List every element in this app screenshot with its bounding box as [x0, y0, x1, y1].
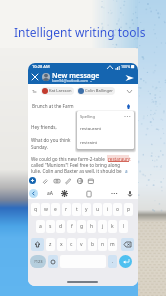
staticText: r	[65, 206, 68, 213]
staticText: p	[127, 206, 131, 213]
staticText: u	[96, 206, 100, 213]
button[interactable]: restaurant	[77, 121, 134, 135]
staticText: y	[85, 206, 88, 213]
button[interactable]: Backspace	[121, 238, 134, 251]
staticText: b	[91, 241, 95, 248]
staticText: aA	[47, 190, 53, 197]
staticText: restraint	[80, 139, 98, 145]
staticText: restaurant	[80, 125, 102, 131]
button[interactable]: Voice input	[124, 188, 135, 199]
staticText: d	[59, 223, 63, 230]
button[interactable]: Back	[28, 188, 39, 199]
staticText: Julie, Colin and Baxter as well, it shou…	[31, 168, 123, 174]
button[interactable]: Settings	[59, 188, 70, 199]
staticText: s	[49, 223, 52, 230]
staticText: Sunday.	[31, 144, 48, 150]
staticText: To	[32, 89, 37, 95]
button[interactable]: w	[41, 203, 50, 216]
button[interactable]: Calendar	[85, 175, 96, 186]
button[interactable]: v	[77, 238, 86, 251]
staticText: Colin Ballinger	[85, 88, 113, 94]
button[interactable]: Enter	[119, 255, 132, 268]
button[interactable]: More options	[109, 188, 120, 199]
staticText: Brunch at the Farm	[32, 103, 74, 109]
button[interactable]: u	[93, 203, 102, 216]
button[interactable]: z	[46, 238, 55, 251]
button[interactable]: s	[46, 220, 55, 233]
button[interactable]: Close	[29, 71, 41, 83]
button[interactable]: Send	[122, 71, 136, 85]
button[interactable]: t	[72, 203, 81, 216]
button[interactable]: Period	[108, 255, 117, 268]
staticText: h	[90, 223, 94, 230]
button[interactable]: Signature	[62, 175, 73, 186]
button[interactable]: m	[108, 238, 117, 251]
button[interactable]: Emoji	[48, 255, 58, 268]
button[interactable]: b	[88, 238, 97, 251]
button[interactable]: r	[62, 203, 71, 216]
staticText: t	[76, 206, 78, 213]
staticText: a	[125, 168, 128, 174]
staticText: l	[123, 223, 125, 230]
button[interactable]: a	[36, 220, 45, 233]
button[interactable]: restraint	[77, 135, 134, 149]
staticText: 10:28 AM	[32, 64, 50, 69]
staticText: i	[107, 206, 109, 213]
button[interactable]: g	[77, 220, 86, 233]
staticText: New message	[52, 71, 100, 81]
button[interactable]: Formatting	[44, 188, 55, 199]
button[interactable]: j	[98, 220, 107, 233]
button[interactable]: Kat Larsson	[41, 87, 74, 95]
staticText: called "Munions"! Feel free to bring alo…	[31, 162, 121, 168]
button[interactable]: d	[56, 220, 65, 233]
button[interactable]: Symbols	[30, 255, 46, 268]
button[interactable]: Take photo	[51, 175, 62, 186]
button[interactable]: c	[67, 238, 76, 251]
staticText: g	[80, 223, 84, 230]
staticText: Hey friends,	[31, 124, 57, 130]
staticText: n	[101, 241, 105, 248]
staticText: z	[49, 241, 52, 248]
button[interactable]: i	[103, 203, 112, 216]
staticText: f	[71, 223, 73, 230]
button[interactable]: Attach file	[39, 175, 50, 186]
staticText: .	[112, 258, 114, 265]
staticText: Spelling	[80, 114, 95, 119]
staticText: o	[116, 206, 120, 213]
staticText: Kat Larsson	[49, 88, 72, 94]
button[interactable]: Colin Ballinger	[77, 87, 115, 95]
staticText: e	[54, 206, 57, 213]
staticText: ?123	[34, 259, 43, 264]
staticText: j	[102, 223, 104, 230]
button[interactable]: Shift	[31, 238, 44, 251]
staticText: c	[70, 241, 73, 248]
staticText: 100%	[121, 64, 131, 69]
button[interactable]: n	[98, 238, 107, 251]
staticText: m	[110, 241, 115, 248]
button[interactable]: Add attachment	[28, 175, 38, 186]
button[interactable]: e	[51, 203, 60, 216]
button[interactable]: o	[113, 203, 122, 216]
button[interactable]: x	[57, 238, 66, 251]
staticText: What do you think	[31, 137, 71, 143]
staticText: k	[111, 223, 114, 230]
button[interactable]: k	[108, 220, 117, 233]
staticText: kam94@outlook.com ⌄	[52, 78, 93, 83]
staticText: w	[44, 206, 48, 213]
button[interactable]: y	[82, 203, 91, 216]
button[interactable]: q	[31, 203, 40, 216]
button[interactable]: f	[67, 220, 76, 233]
button[interactable]: l	[119, 220, 128, 233]
staticText: q	[34, 206, 38, 213]
staticText: x	[60, 241, 63, 248]
button[interactable]: Insert link	[74, 175, 85, 186]
staticText: v	[80, 241, 83, 248]
staticText: We could go this new farm-2-table	[31, 156, 106, 162]
staticText: a	[39, 223, 42, 230]
button[interactable]: h	[87, 220, 96, 233]
staticText: restaraunt	[108, 156, 131, 162]
staticText: Intelligent writing tools	[14, 24, 146, 40]
button[interactable]: Notes	[83, 188, 94, 199]
button[interactable]: p	[124, 203, 133, 216]
